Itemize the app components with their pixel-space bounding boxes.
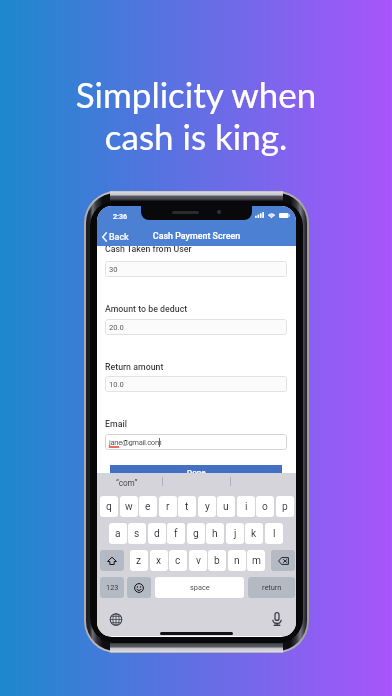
staticText: 10.0 (109, 380, 124, 389)
staticText: g (193, 528, 199, 540)
button[interactable]: 10.0 (105, 376, 287, 392)
staticText: z (136, 555, 142, 567)
button[interactable]: u (217, 496, 235, 517)
staticText: f (174, 528, 178, 540)
staticText: m (252, 555, 261, 567)
staticText: r (166, 501, 170, 513)
button[interactable]: a (109, 523, 127, 544)
button[interactable]: j (226, 523, 244, 544)
staticText: Simplicity when (0, 73, 392, 115)
button[interactable]: space (155, 577, 244, 598)
button[interactable]: g (187, 523, 205, 544)
staticText: d (154, 528, 160, 540)
button[interactable]: h (206, 523, 224, 544)
button[interactable]: s (128, 523, 146, 544)
staticText: Return amount (105, 362, 164, 372)
staticText: h (212, 528, 218, 540)
button[interactable]: y (198, 496, 216, 517)
button[interactable]: i (237, 496, 255, 517)
staticText: 30 (109, 265, 118, 274)
staticText: c (175, 555, 181, 567)
staticText: Cash Taken from User (105, 244, 192, 254)
staticText: Amount to be deduct (105, 304, 188, 314)
staticText: Back (109, 232, 129, 242)
staticText: return (262, 583, 282, 592)
staticText: b (214, 555, 220, 567)
button[interactable]: jane@gmail.com (105, 434, 287, 450)
staticText: x (156, 555, 162, 567)
button[interactable]: Dictation (272, 612, 282, 626)
button[interactable]: b (208, 550, 226, 571)
button[interactable]: v (189, 550, 207, 571)
staticText: k (251, 528, 257, 540)
button[interactable]: t (178, 496, 196, 517)
button[interactable]: x (150, 550, 168, 571)
button[interactable]: Switch keyboard (109, 613, 123, 626)
button[interactable]: o (256, 496, 274, 517)
staticText: y (205, 501, 210, 513)
staticText: p (282, 501, 288, 513)
staticText: w (125, 501, 133, 513)
button[interactable]: return (248, 577, 295, 598)
button[interactable]: Shift (100, 550, 124, 571)
button[interactable]: l (265, 523, 283, 544)
staticText: e (145, 501, 151, 513)
staticText: o (262, 501, 268, 513)
button[interactable]: m (247, 550, 265, 571)
button[interactable]: 20.0 (105, 319, 287, 335)
button[interactable]: Numbers (100, 577, 124, 598)
staticText: s (134, 528, 140, 540)
staticText: 20.0 (109, 323, 124, 332)
staticText: u (223, 501, 229, 513)
button[interactable]: Back (100, 230, 132, 244)
button[interactable]: r (159, 496, 177, 517)
button[interactable]: e (139, 496, 157, 517)
staticText: space (190, 583, 210, 592)
button[interactable]: w (120, 496, 138, 517)
staticText: Email (105, 419, 127, 429)
staticText: l (273, 528, 276, 540)
button[interactable]: d (148, 523, 166, 544)
button[interactable]: c (169, 550, 187, 571)
button[interactable]: Emoji (127, 577, 151, 598)
button[interactable]: k (245, 523, 263, 544)
button[interactable]: q (100, 496, 118, 517)
staticText: Cash Payment Screen (97, 231, 296, 241)
staticText: cash is king. (0, 115, 392, 157)
staticText: q (106, 501, 112, 513)
button[interactable]: Done (110, 465, 282, 479)
button[interactable]: n (228, 550, 246, 571)
staticText: t (185, 501, 189, 513)
staticText: n (234, 555, 240, 567)
staticText: a (115, 528, 121, 540)
staticText: v (196, 555, 201, 567)
staticText: “com” (116, 478, 138, 488)
staticText: jane@gmail.com (109, 438, 162, 447)
staticText: i (245, 501, 248, 513)
staticText: j (234, 528, 237, 540)
staticText: 123 (106, 583, 119, 592)
staticText: 2:36 (113, 212, 128, 220)
button[interactable]: p (276, 496, 294, 517)
button[interactable]: z (130, 550, 148, 571)
staticText: Done (187, 468, 206, 477)
button[interactable]: 30 (105, 261, 287, 277)
button[interactable]: f (167, 523, 185, 544)
button[interactable]: Backspace (271, 550, 295, 571)
